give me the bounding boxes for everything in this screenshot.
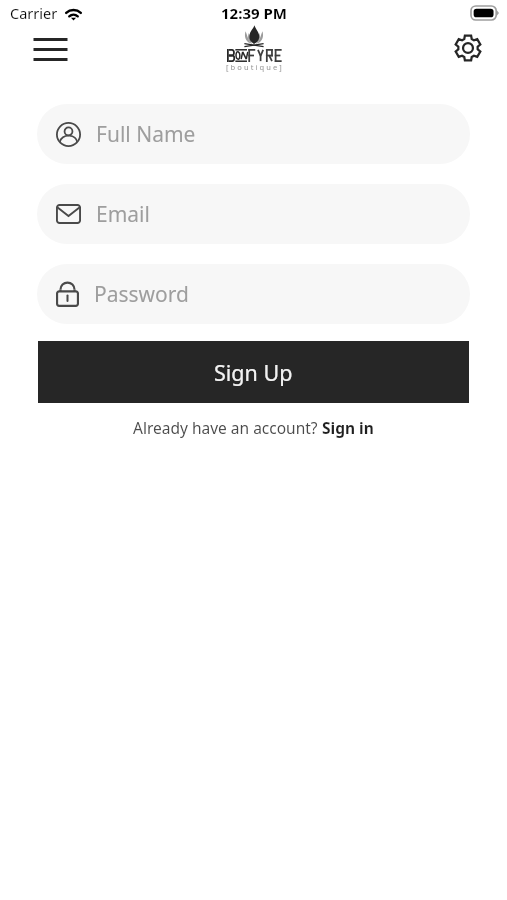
staticText: Carrier xyxy=(10,3,58,23)
staticText: Sign Up xyxy=(214,358,293,387)
staticText: Full Name xyxy=(96,120,196,149)
button[interactable]: Full Name xyxy=(37,104,470,164)
staticText: Password xyxy=(94,280,189,309)
staticText: Email xyxy=(96,200,150,229)
button[interactable]: Password xyxy=(37,264,470,324)
staticText: [boutique] xyxy=(226,62,284,72)
staticText: Already have an account? xyxy=(133,417,322,438)
staticText: 12:39 PM xyxy=(221,3,287,23)
staticText: Sign in xyxy=(322,417,374,438)
button[interactable]: Sign Up xyxy=(38,341,469,403)
button[interactable]: Email xyxy=(37,184,470,244)
button[interactable]: Settings xyxy=(446,26,490,70)
button[interactable]: Menu xyxy=(26,27,74,71)
button[interactable]: Already have an account? xyxy=(133,417,374,438)
